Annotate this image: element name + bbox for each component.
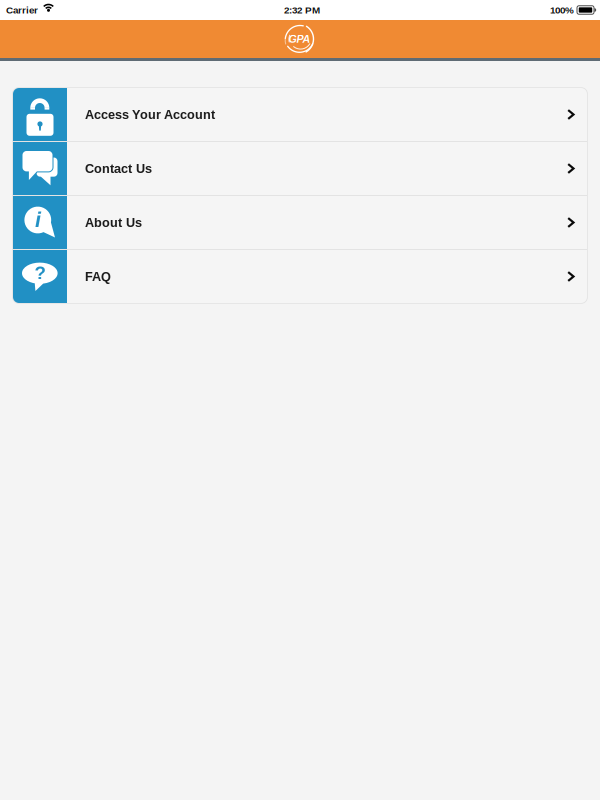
button[interactable]: i	[13, 196, 587, 249]
staticText: GPA	[288, 33, 310, 45]
staticText: 100%	[550, 4, 574, 15]
button[interactable]: Contact Us	[13, 142, 587, 195]
staticText: Carrier	[6, 4, 38, 15]
staticText: FAQ	[85, 269, 111, 284]
staticText: ?	[34, 263, 45, 283]
button[interactable]: ?	[13, 250, 587, 303]
staticText: i	[35, 208, 41, 232]
staticText: 2:32 PM	[284, 4, 320, 15]
button[interactable]: Access Your Account	[13, 88, 587, 141]
staticText: Access Your Account	[85, 107, 215, 122]
staticText: Contact Us	[85, 161, 152, 176]
staticText: About Us	[85, 215, 142, 230]
